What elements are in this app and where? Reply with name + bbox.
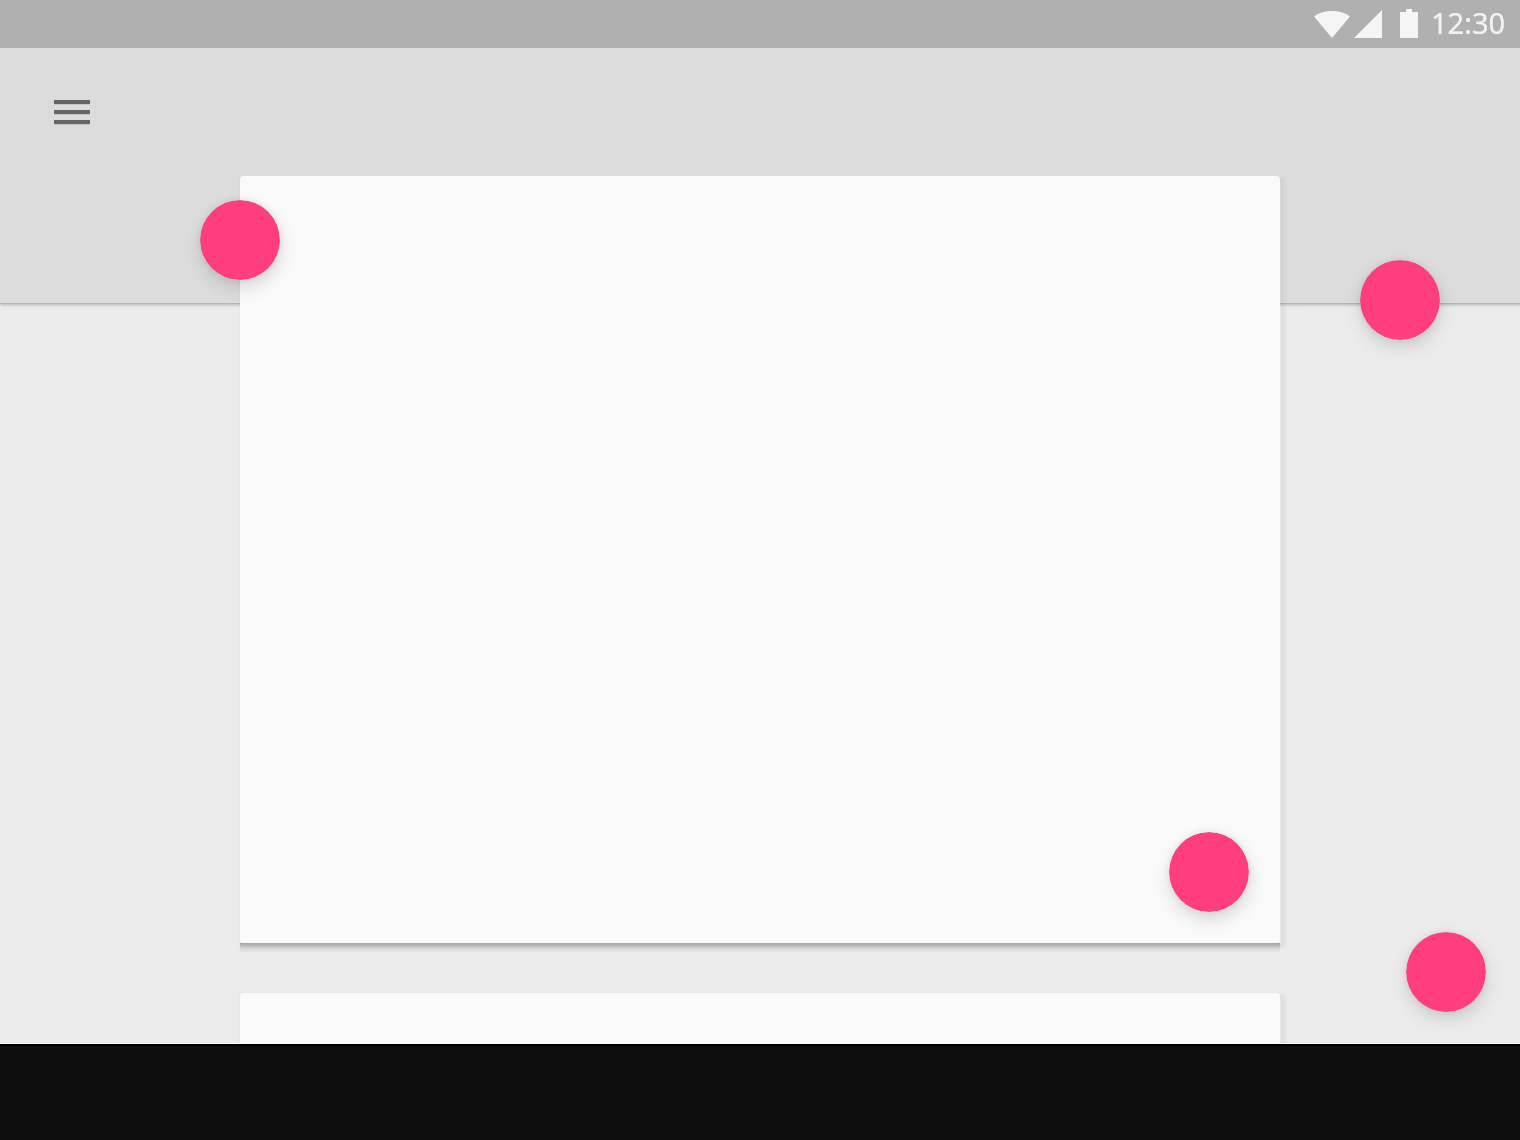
button[interactable]: Compose (1169, 832, 1249, 912)
button[interactable]: Create (1360, 260, 1440, 340)
button[interactable]: List card (240, 993, 1280, 1140)
staticText: 12:30 (1431, 3, 1506, 42)
button[interactable]: Add (200, 200, 280, 280)
button[interactable]: More actions (1406, 932, 1486, 1012)
button[interactable]: Open navigation menu (24, 64, 120, 160)
button[interactable]: List card (240, 176, 1280, 943)
button[interactable]: System navigation bar (0, 1043, 1520, 1140)
